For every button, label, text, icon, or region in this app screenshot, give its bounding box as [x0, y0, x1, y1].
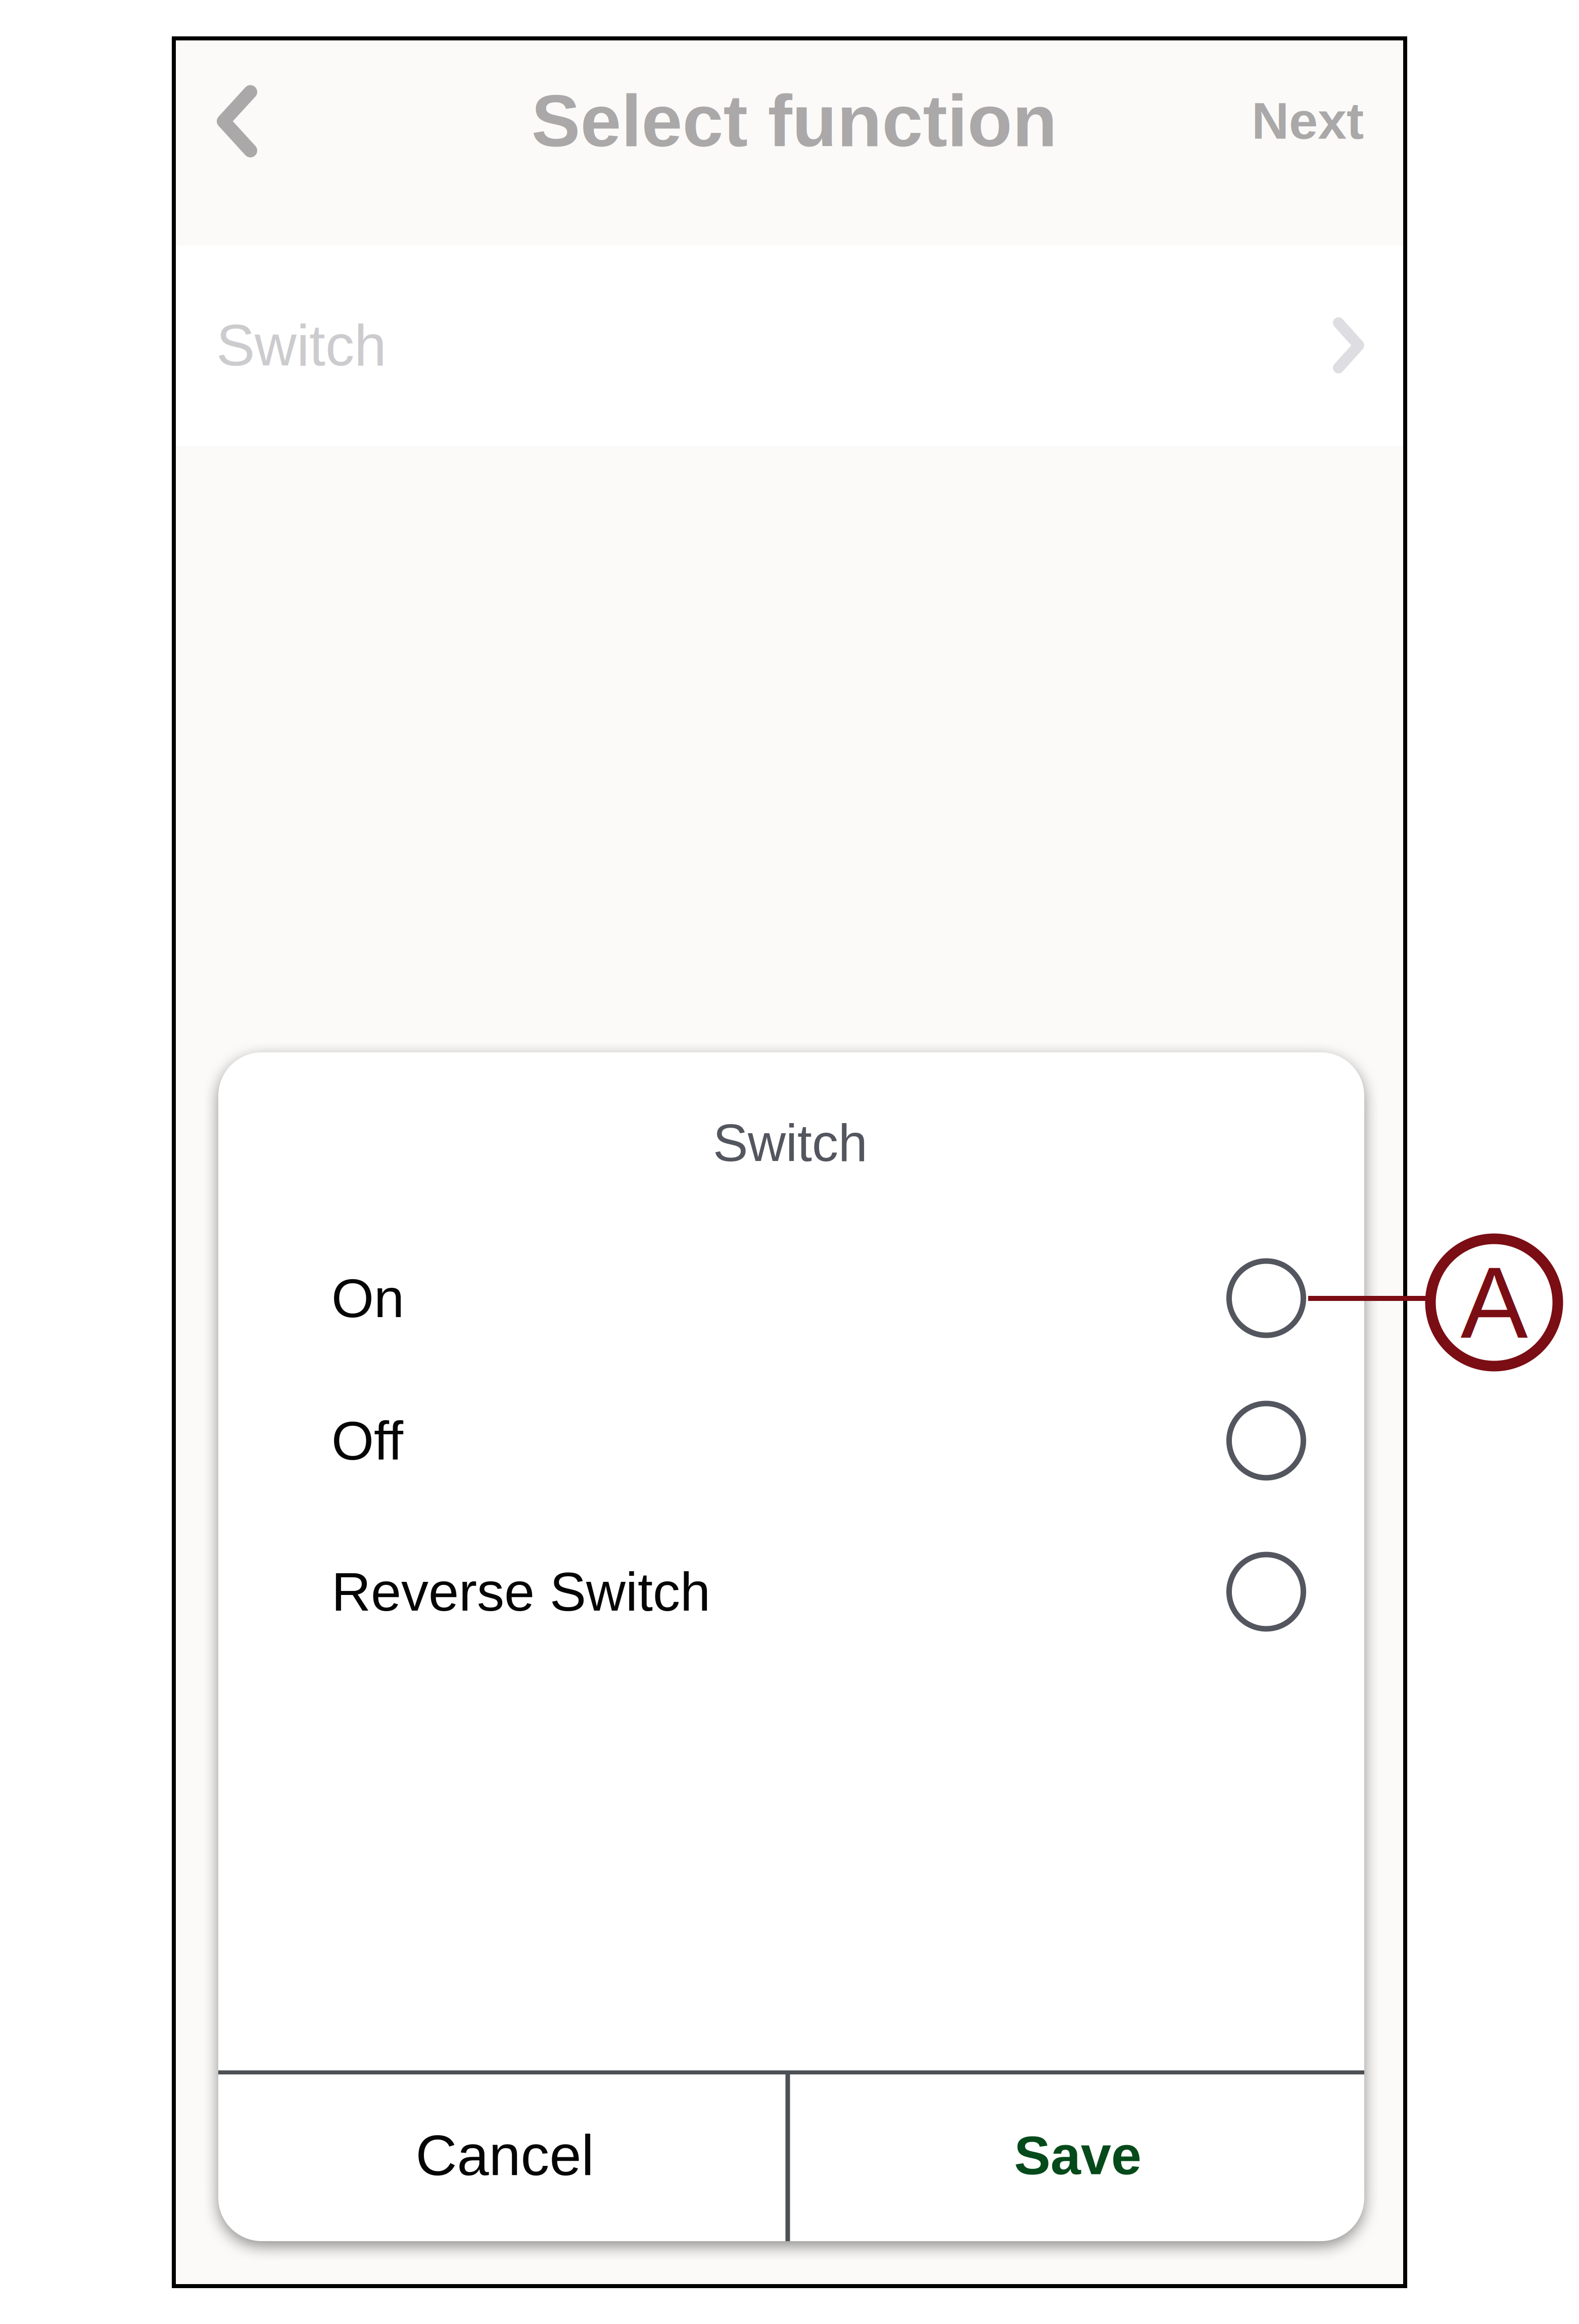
- staticText: Switch: [713, 1113, 868, 1172]
- button[interactable]: Reverse Switch: [218, 1521, 1364, 1661]
- staticText: Select function: [531, 80, 1057, 162]
- button[interactable]: Cancel: [219, 2073, 790, 2238]
- button[interactable]: On: [218, 1228, 1364, 1368]
- button[interactable]: Back: [179, 58, 295, 184]
- staticText: Next: [1252, 92, 1364, 150]
- button[interactable]: Next: [1141, 58, 1364, 184]
- staticText: Cancel: [416, 2123, 594, 2187]
- staticText: Save: [1014, 2125, 1141, 2186]
- staticText: A: [1461, 1246, 1528, 1359]
- staticText: Off: [331, 1410, 403, 1471]
- button[interactable]: Off: [218, 1370, 1364, 1510]
- button[interactable]: Save: [792, 2073, 1363, 2238]
- staticText: Reverse Switch: [331, 1561, 710, 1622]
- button[interactable]: Switch: [176, 245, 1403, 446]
- staticText: Switch: [216, 313, 387, 378]
- staticText: On: [331, 1268, 404, 1329]
